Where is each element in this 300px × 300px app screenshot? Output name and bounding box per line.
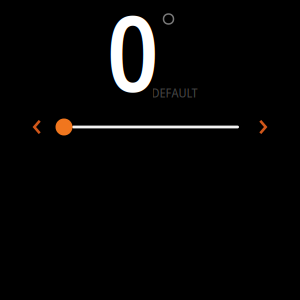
button[interactable]: Angle slider — [56, 114, 262, 140]
staticText: DEFAULT — [151, 84, 197, 101]
staticText: 0 — [106, 0, 159, 123]
button[interactable]: Decrease — [22, 111, 52, 143]
button[interactable]: Increase — [248, 111, 278, 143]
